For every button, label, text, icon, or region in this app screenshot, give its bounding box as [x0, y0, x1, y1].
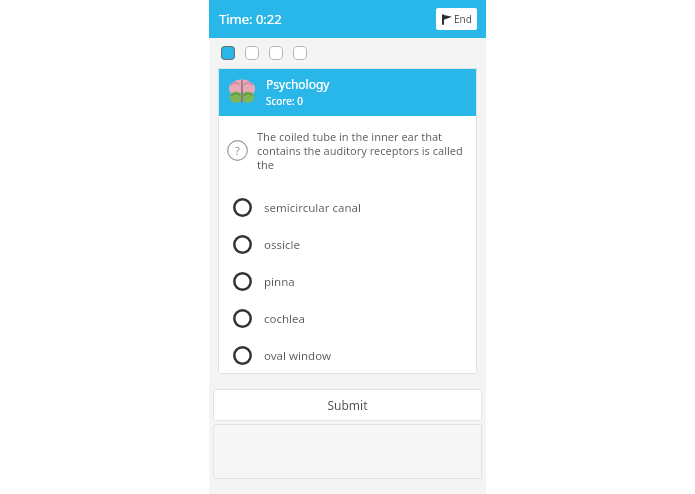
button[interactable]: Question 4	[293, 46, 307, 60]
button[interactable]: End quiz	[436, 8, 477, 30]
button[interactable]: Submit	[213, 389, 482, 421]
button[interactable]: Question 3	[269, 46, 283, 60]
staticText: ?	[235, 143, 240, 158]
button[interactable]: semicircular canal	[218, 189, 477, 226]
staticText: Time: 0:22	[219, 10, 282, 28]
staticText: Score: 0	[266, 94, 303, 108]
staticText: ossicle	[264, 237, 300, 253]
staticText: pinna	[264, 274, 295, 290]
other: Psychology	[227, 77, 257, 107]
staticText: semicircular canal	[264, 200, 362, 216]
button[interactable]: cochlea	[218, 300, 477, 337]
staticText: End	[454, 12, 472, 26]
button[interactable]: Question 2	[245, 46, 259, 60]
button[interactable]: oval window	[218, 337, 477, 374]
button[interactable]: pinna	[218, 263, 477, 300]
staticText: Submit	[327, 397, 368, 413]
button[interactable]: Question 1	[221, 46, 235, 60]
staticText: Psychology	[266, 76, 330, 92]
staticText: oval window	[264, 348, 331, 364]
button[interactable]: ossicle	[218, 226, 477, 263]
staticText: cochlea	[264, 311, 306, 327]
staticText: The coiled tube in the inner ear that co…	[257, 129, 465, 172]
